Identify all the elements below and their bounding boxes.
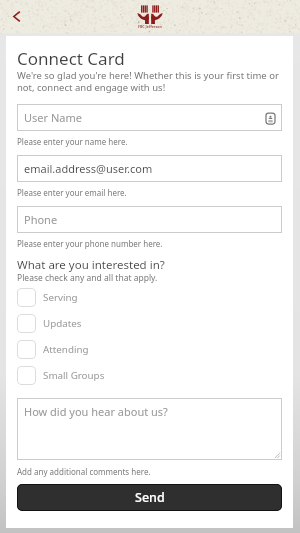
button[interactable]: How did you hear about us? [17,398,282,460]
staticText: What are you interested in? [17,257,165,273]
staticText: User Name [24,110,82,125]
staticText: Attending [43,343,89,356]
staticText: Send [135,489,165,506]
staticText: We're so glad you're here! Whether this … [17,69,285,94]
staticText: Phone [24,212,58,227]
staticText: Please enter your name here. [17,136,128,147]
staticText: Connect Card [17,47,125,70]
button[interactable]: Small Groups [17,366,282,385]
button[interactable]: Serving [17,288,282,307]
staticText: Small Groups [43,369,105,382]
button[interactable]: Back [3,3,29,29]
staticText: Please enter your phone number here. [17,238,163,249]
button[interactable]: Updates [17,314,282,333]
button[interactable]: Attending [17,340,282,359]
staticText: Add any additional comments here. [17,466,151,477]
button[interactable]: Phone [17,206,282,233]
staticText: Please enter your email here. [17,187,127,198]
staticText: Serving [43,291,78,304]
staticText: Please check any and all that apply. [17,272,158,284]
staticText: FBC Jefferson [138,24,162,29]
staticText: email.address@user.com [24,161,153,176]
button[interactable]: User Name [17,104,282,131]
button[interactable]: Send [17,484,282,511]
staticText: Updates [43,317,82,330]
button[interactable]: email.address@user.com [17,155,282,182]
staticText: How did you hear about us? [24,404,168,419]
